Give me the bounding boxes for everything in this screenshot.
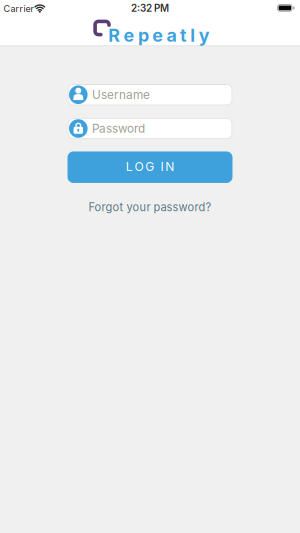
button[interactable]: Password (67, 118, 232, 139)
staticText: a (167, 24, 177, 46)
staticText: e (152, 24, 163, 46)
button[interactable]: Forgot your password? (88, 201, 211, 214)
staticText: R (108, 24, 120, 46)
button[interactable]: Username (67, 84, 232, 105)
staticText: l (190, 24, 195, 46)
staticText: Carrier (4, 3, 34, 14)
button[interactable]: L (67, 151, 232, 183)
staticText: p (138, 24, 149, 46)
staticText: I (160, 159, 163, 174)
textField[interactable]: Username (92, 88, 232, 102)
staticText: 2:32 PM (131, 2, 169, 14)
secureTextField[interactable]: Password (92, 121, 232, 136)
staticText: t (180, 24, 187, 46)
staticText: L (126, 159, 133, 174)
staticText: e (123, 24, 134, 46)
staticText: Forgot your password? (88, 201, 211, 214)
staticText: N (165, 159, 174, 174)
staticText: Password (92, 121, 145, 136)
staticText: G (145, 159, 154, 174)
staticText: O (134, 159, 143, 174)
staticText: Username (92, 88, 150, 102)
staticText: y (199, 24, 210, 46)
